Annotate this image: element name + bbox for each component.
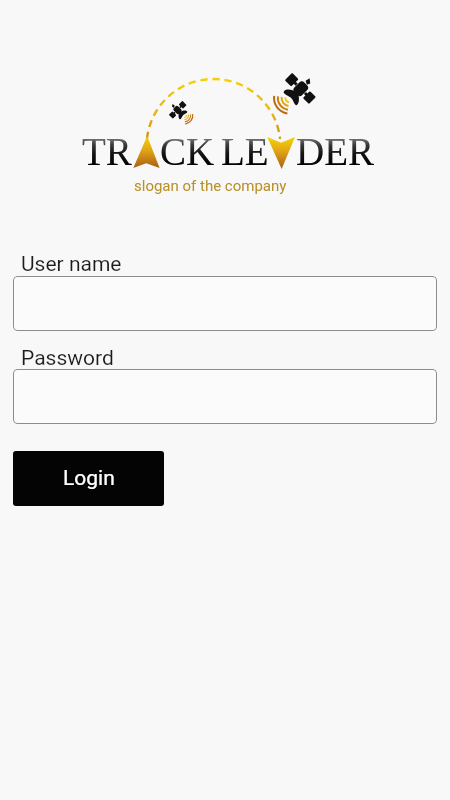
button[interactable]: User name	[21, 252, 122, 277]
staticText: User name	[21, 252, 122, 277]
button[interactable]: Password	[21, 346, 114, 371]
staticText: LE	[221, 130, 269, 173]
staticText: DER	[296, 130, 374, 173]
button[interactable]: Password input	[13, 369, 437, 424]
staticText: Password	[21, 346, 114, 371]
button[interactable]: Login	[13, 451, 164, 506]
button[interactable]: User name input	[13, 276, 437, 331]
staticText: CK	[160, 130, 215, 173]
staticText: slogan of the company	[134, 177, 287, 195]
staticText: TR	[82, 130, 132, 173]
staticText: Login	[63, 466, 115, 491]
